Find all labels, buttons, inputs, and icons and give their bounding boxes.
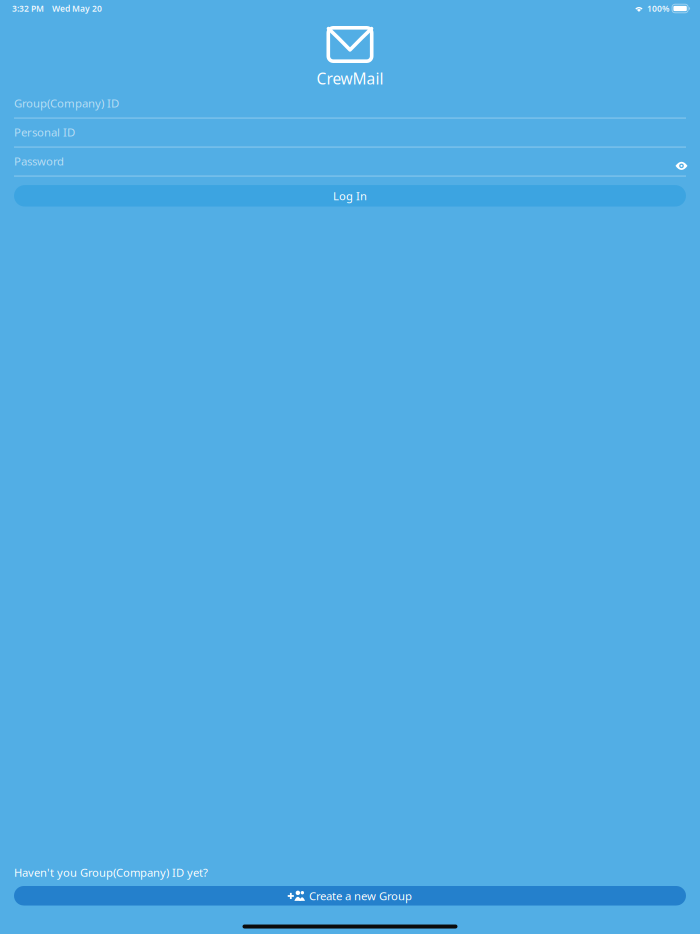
staticText: 100%	[647, 3, 669, 14]
button[interactable]: Password	[14, 152, 674, 170]
button[interactable]: Personal ID	[14, 123, 686, 141]
staticText: CrewMail	[316, 68, 383, 89]
button[interactable]: Show password	[674, 152, 686, 170]
staticText: Wed May 20	[52, 3, 102, 14]
button[interactable]: Create a new Group	[14, 886, 686, 905]
staticText: Personal ID	[14, 124, 75, 140]
staticText: Group(Company) ID	[14, 95, 119, 111]
button[interactable]: Group(Company) ID	[14, 94, 686, 112]
button[interactable]: Log In	[14, 185, 686, 207]
staticText: Password	[14, 153, 64, 169]
staticText: 3:32 PM	[12, 3, 44, 14]
staticText: Create a new Group	[309, 888, 412, 903]
staticText: Haven't you Group(Company) ID yet?	[14, 865, 208, 880]
staticText: Log In	[333, 188, 367, 203]
